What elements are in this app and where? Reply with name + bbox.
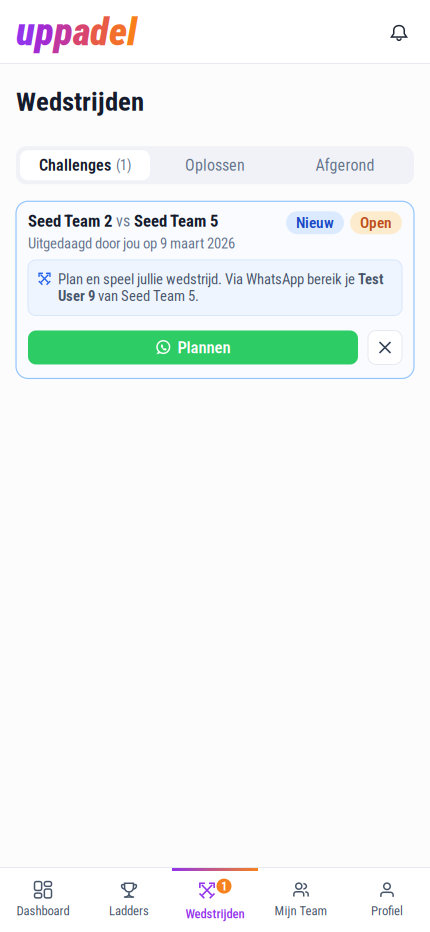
staticText: Seed Team 5 (134, 211, 218, 231)
staticText: Challenges (39, 156, 111, 175)
staticText: Afgerond (315, 156, 374, 175)
staticText: d (90, 9, 109, 55)
button[interactable]: Afgerond (280, 150, 410, 180)
button[interactable]: Profiel (344, 868, 430, 932)
button[interactable]: 1 (172, 868, 258, 932)
staticText: Uitgedaagd door jou op 9 maart 2026 (28, 235, 235, 252)
staticText: p (54, 9, 73, 55)
staticText: 1 (221, 879, 227, 893)
button[interactable]: Plannen (28, 330, 358, 364)
button[interactable]: Oplossen (150, 150, 280, 180)
staticText: e (109, 9, 127, 55)
staticText: Wedstrijden (16, 86, 144, 117)
button[interactable]: Dashboard (0, 868, 86, 932)
staticText: vs (116, 212, 130, 230)
staticText: Wedstrijden (185, 907, 244, 921)
staticText: Ladders (109, 904, 149, 918)
staticText: Plan en speel jullie wedstrijd. Via What… (58, 271, 383, 304)
staticText: Mijn Team (274, 904, 327, 918)
staticText: p (35, 9, 54, 55)
staticText: Open (360, 214, 392, 232)
button[interactable]: Challenges (20, 150, 150, 180)
button[interactable]: Dismiss challenge (368, 330, 402, 364)
staticText: u (16, 9, 35, 55)
staticText: Nieuw (296, 214, 334, 232)
staticText: a (73, 9, 90, 55)
staticText: Plannen (177, 338, 230, 357)
staticText: (1) (116, 157, 131, 173)
staticText: Oplossen (185, 156, 245, 175)
staticText: l (127, 9, 137, 55)
staticText: Profiel (371, 904, 403, 918)
button[interactable]: Notifications (378, 10, 420, 54)
staticText: Dashboard (16, 904, 69, 918)
staticText: Seed Team 2 (28, 211, 112, 231)
button[interactable]: Mijn Team (258, 868, 344, 932)
button[interactable]: Ladders (86, 868, 172, 932)
